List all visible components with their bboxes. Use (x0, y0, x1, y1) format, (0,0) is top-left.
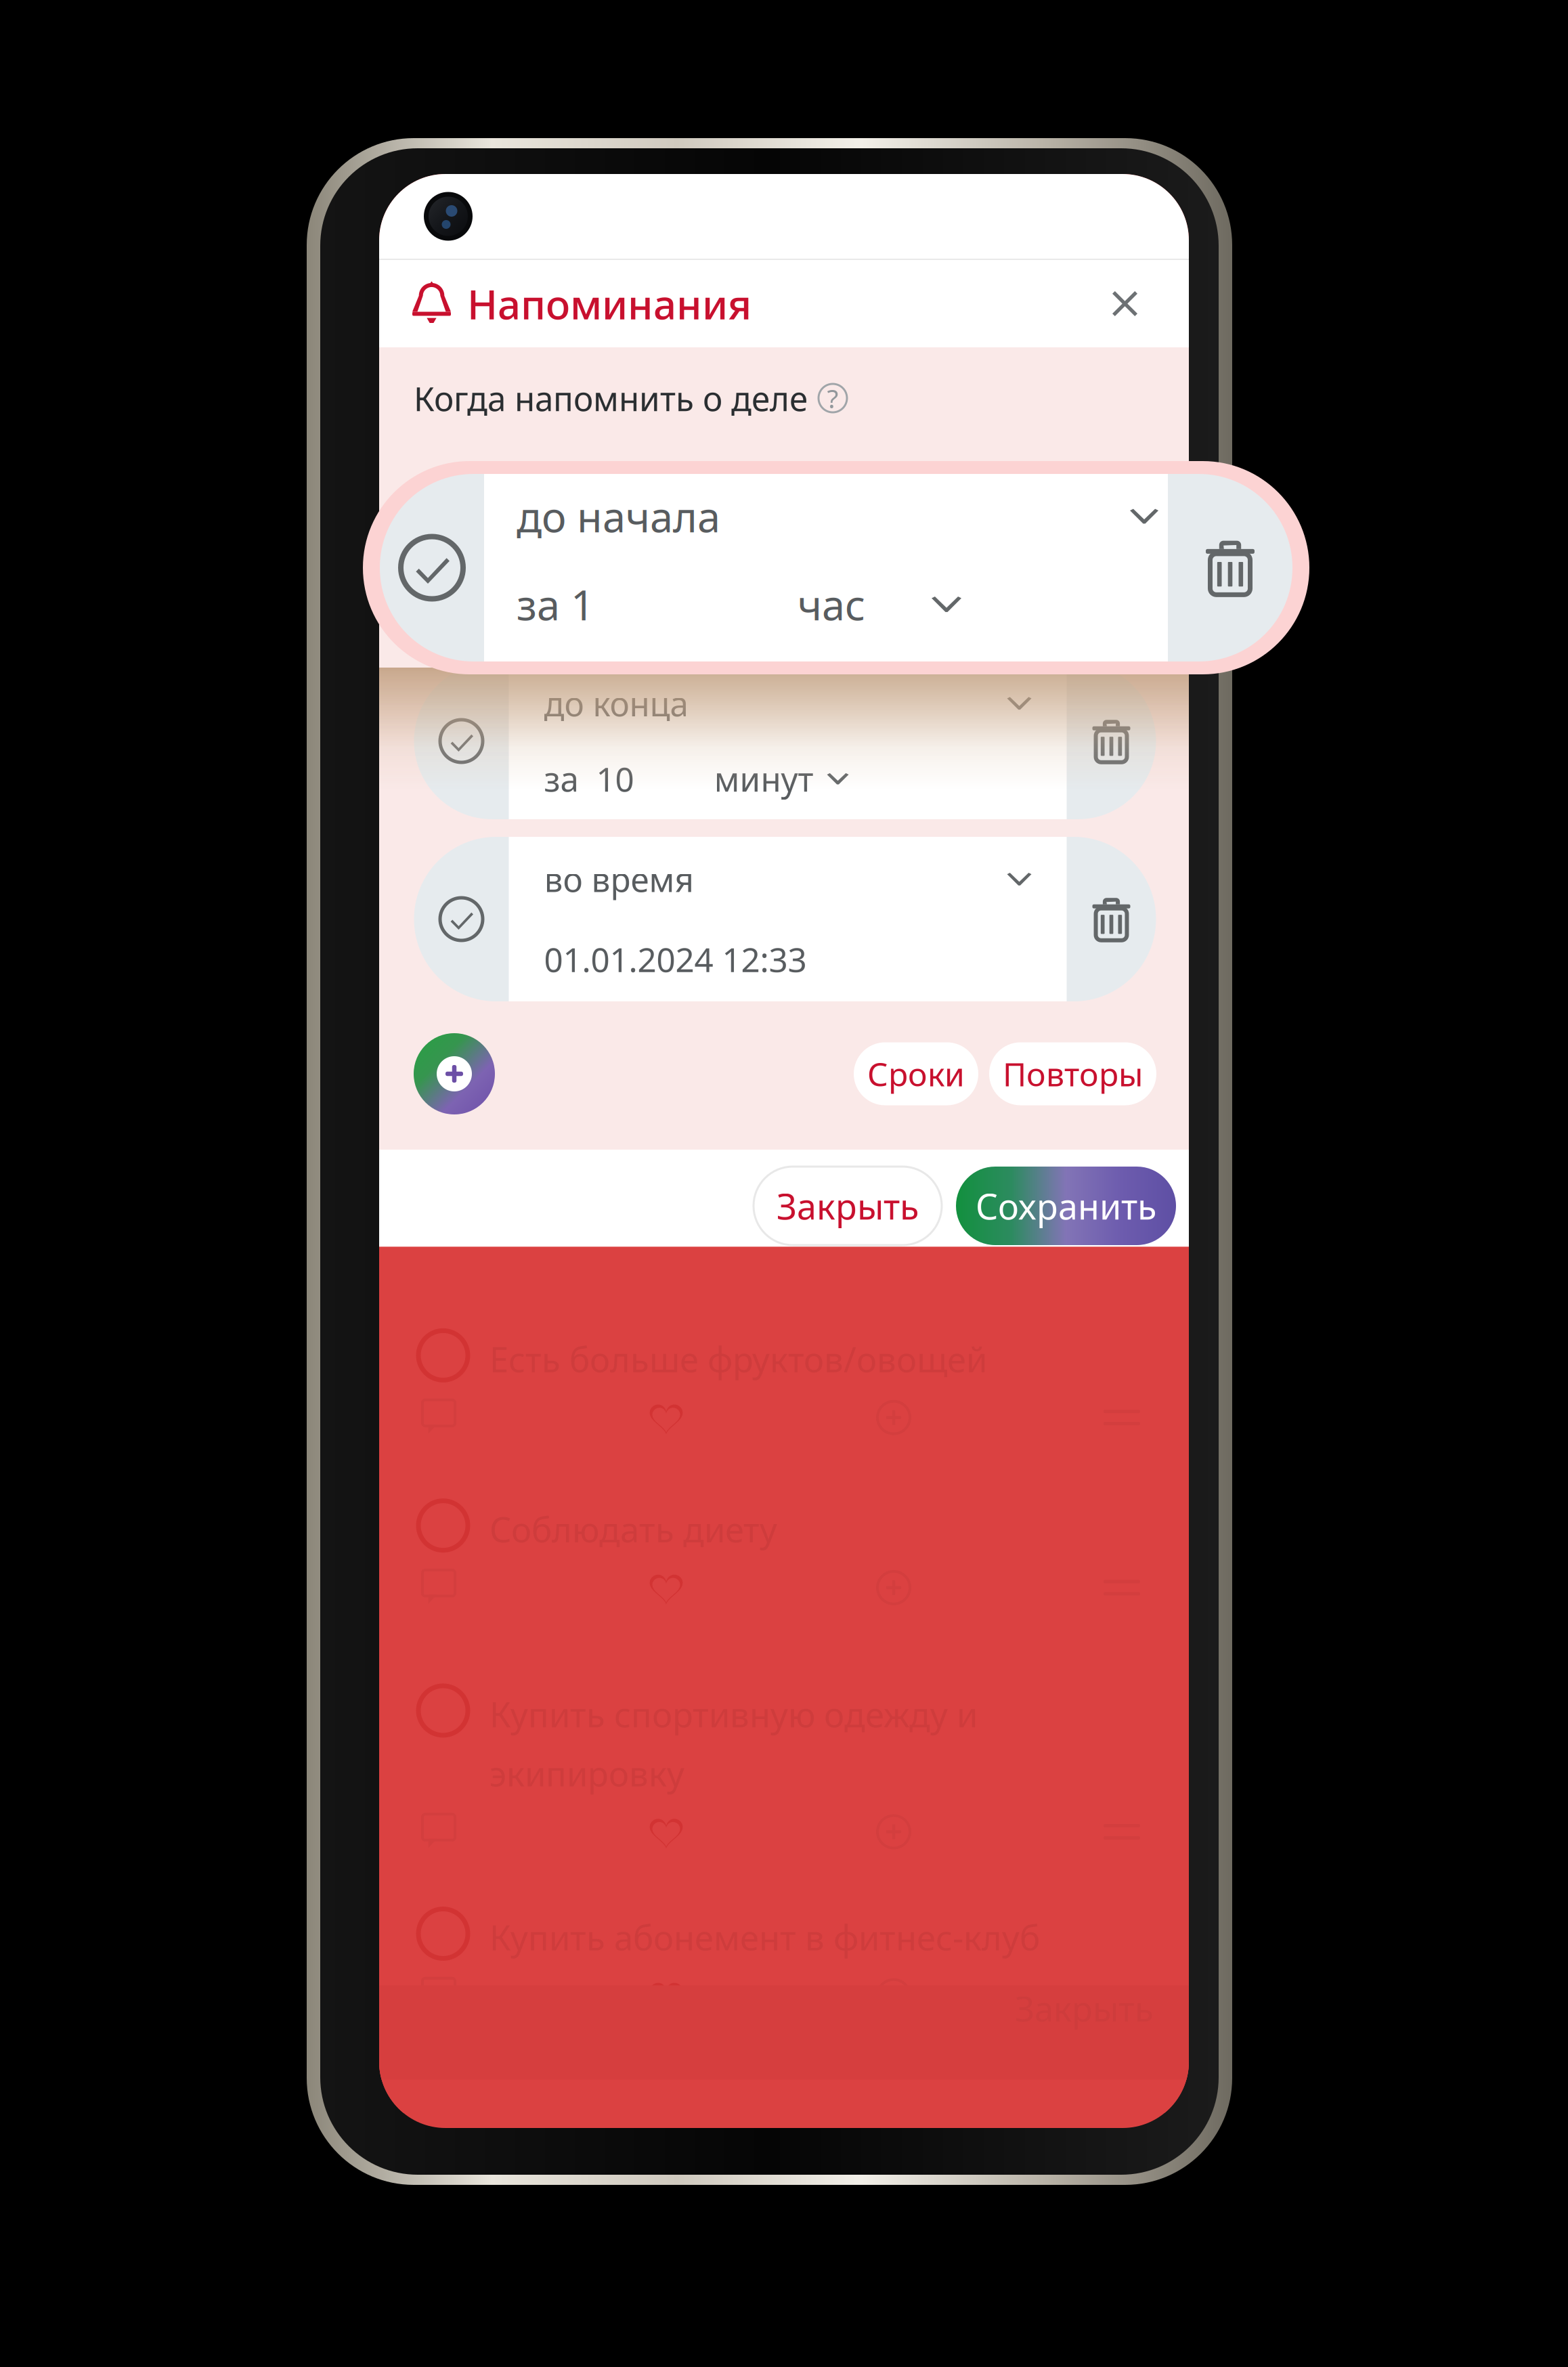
staticText: ? (827, 381, 839, 415)
staticText: Купить спортивную одежду и (489, 1691, 978, 1737)
staticText: до начала (517, 489, 720, 544)
staticText: Соблюдать диету (489, 1506, 777, 1552)
button[interactable]: Повторы (989, 1042, 1156, 1105)
staticText: Сохранить (976, 1182, 1156, 1229)
button[interactable]: Сохранить (956, 1167, 1176, 1245)
staticText: Закрыть (777, 1182, 919, 1229)
staticText: Повторы (1003, 1052, 1143, 1095)
staticText: Сроки (867, 1052, 965, 1095)
button[interactable]: Закрыть (1099, 278, 1151, 330)
staticText: час (798, 577, 865, 632)
staticText: до конца (544, 681, 688, 725)
staticText: Купить абонемент в фитнес-клуб (489, 1914, 1040, 1960)
staticText: за 10 (544, 757, 634, 801)
staticText: Когда напомнить о деле (414, 376, 808, 420)
staticText: Есть больше фруктов/овощей (489, 1336, 987, 1382)
staticText: 01.01.2024 12:33 (544, 937, 807, 981)
button[interactable]: во время (414, 837, 1156, 1001)
staticText: минут (714, 757, 813, 801)
staticText: во время (544, 857, 694, 901)
button[interactable]: до конца (414, 663, 1156, 819)
staticText: Напоминания (467, 277, 752, 331)
staticText: за 1 (517, 577, 594, 632)
button[interactable]: Сроки (854, 1042, 978, 1105)
staticText: экипировку (489, 1750, 684, 1796)
button[interactable]: Закрыть (754, 1167, 942, 1245)
button[interactable]: Добавить напоминание (414, 1033, 495, 1114)
